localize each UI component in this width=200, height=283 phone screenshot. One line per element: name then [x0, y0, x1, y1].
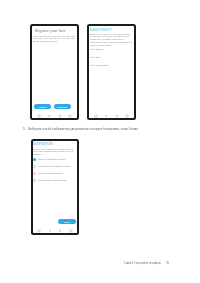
button[interactable]: Home: [57, 228, 63, 234]
staticText: Cancel: [39, 105, 47, 108]
staticText: Your privacy: [90, 47, 104, 50]
staticText: DATA POLICY: [90, 27, 112, 31]
staticText: NOTIFICATIONS: [33, 142, 53, 146]
staticText: Continue: [57, 105, 68, 108]
staticText: Your registered face data will be used t…: [33, 34, 77, 43]
button[interactable]: Cancel: [34, 104, 51, 109]
staticText: Done: [64, 220, 71, 223]
button[interactable]: Done: [58, 219, 76, 224]
staticText: Before your face or iris data can be col…: [90, 32, 133, 47]
button[interactable]: Menu: [68, 228, 74, 234]
button[interactable]: Recents: [93, 113, 99, 119]
staticText: Show content when unlocked: [38, 179, 67, 182]
button[interactable]: Menu: [67, 113, 73, 119]
staticText: Глава 2 Настройка телефона: [124, 261, 161, 265]
button[interactable]: Recents: [36, 113, 42, 119]
button[interactable]: Show all notification content: [33, 156, 77, 163]
staticText: Do not show notifications: [38, 172, 63, 175]
button[interactable]: Back: [47, 228, 53, 234]
staticText: Hide sensitive notification content: [38, 165, 71, 168]
staticText: When your device is locked, how do you w…: [33, 147, 77, 156]
button[interactable]: Menu: [124, 113, 130, 119]
button[interactable]: Back: [46, 113, 52, 119]
staticText: Выберите способ отображения уведомлений …: [28, 127, 139, 131]
staticText: Your information: [90, 63, 110, 66]
staticText: Your data: [90, 55, 101, 58]
staticText: Register your face: [35, 28, 66, 33]
staticText: Show all notification content: [38, 158, 66, 161]
button[interactable]: Show content when unlocked: [33, 177, 77, 184]
button[interactable]: Continue: [54, 104, 71, 109]
staticText: 5.: [23, 127, 26, 131]
button[interactable]: Recents: [36, 228, 42, 234]
staticText: 35: [166, 261, 170, 265]
button[interactable]: Hide sensitive notification content: [33, 163, 77, 170]
button[interactable]: Back: [103, 113, 109, 119]
button[interactable]: Home: [57, 113, 63, 119]
button[interactable]: Do not show notifications: [33, 170, 77, 177]
button[interactable]: Home: [114, 113, 120, 119]
